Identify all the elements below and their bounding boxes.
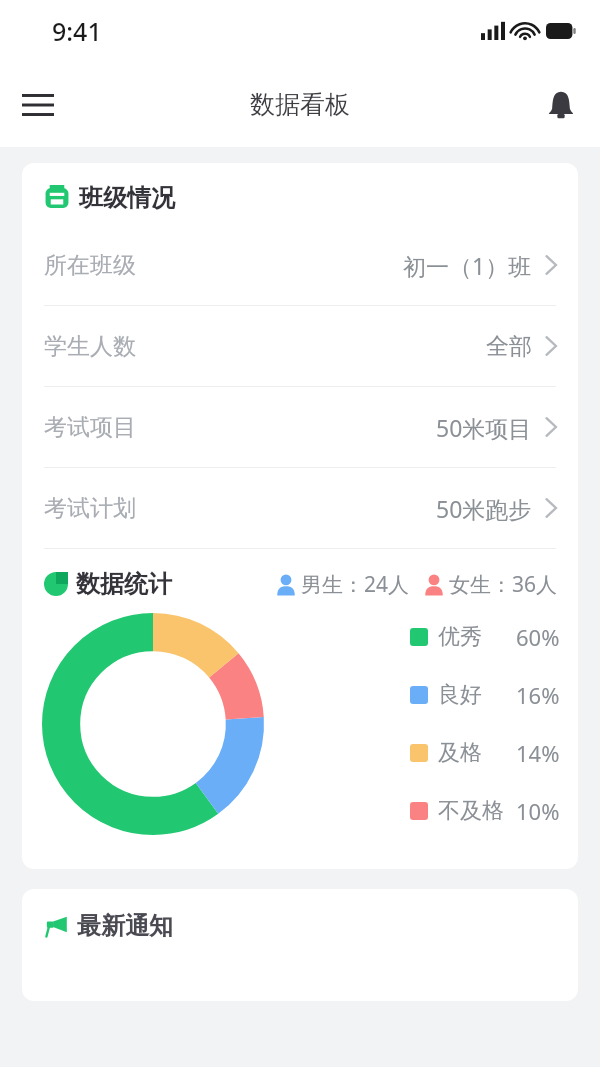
button[interactable]: Menu <box>10 77 66 133</box>
staticText: 考试计划 <box>44 494 136 523</box>
staticText: 16% <box>516 680 560 710</box>
staticText: 50米项目 <box>436 412 532 443</box>
staticText: 不及格 <box>438 797 504 825</box>
button[interactable]: 所在班级 <box>22 225 578 305</box>
staticText: 初一（1）班 <box>403 250 532 281</box>
staticText: 数据看板 <box>250 89 350 120</box>
button[interactable]: Notifications <box>534 78 588 132</box>
staticText: 14% <box>516 738 560 768</box>
staticText: 优秀 <box>438 623 482 651</box>
staticText: 良好 <box>438 681 482 709</box>
staticText: 全部 <box>486 332 532 361</box>
staticText: 男生：24人 <box>301 570 410 599</box>
staticText: 最新通知 <box>77 911 173 941</box>
button[interactable]: 考试计划 <box>22 468 578 548</box>
staticText: 女生：36人 <box>449 570 558 599</box>
staticText: 班级情况 <box>79 183 175 213</box>
staticText: 60% <box>516 622 560 652</box>
staticText: 所在班级 <box>44 251 136 280</box>
button[interactable]: 考试项目 <box>22 387 578 467</box>
staticText: 10% <box>516 796 560 826</box>
staticText: 及格 <box>438 739 482 767</box>
staticText: 学生人数 <box>44 332 136 361</box>
button[interactable]: 学生人数 <box>22 306 578 386</box>
staticText: 50米跑步 <box>436 493 532 524</box>
staticText: 数据统计 <box>76 569 172 599</box>
staticText: 考试项目 <box>44 413 136 442</box>
staticText: 9:41 <box>52 14 102 48</box>
